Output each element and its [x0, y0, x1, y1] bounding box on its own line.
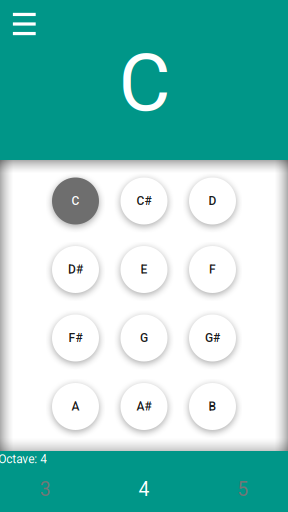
staticText: D	[208, 194, 216, 208]
staticText: A#	[136, 399, 151, 414]
staticText: D#	[68, 262, 83, 277]
staticText: G	[140, 331, 148, 345]
button[interactable]: D	[189, 177, 236, 224]
staticText: F#	[68, 331, 82, 345]
button[interactable]: D#	[52, 246, 99, 293]
button[interactable]: Menu	[2, 2, 47, 46]
button[interactable]: F#	[52, 314, 99, 361]
staticText: B	[208, 399, 216, 414]
button[interactable]: E	[120, 246, 167, 293]
staticText: G#	[205, 331, 220, 345]
button[interactable]: C	[52, 177, 99, 224]
button[interactable]: A#	[120, 383, 167, 430]
staticText: A	[71, 399, 79, 414]
staticText: 5	[237, 478, 248, 501]
button[interactable]: G	[120, 314, 167, 361]
button[interactable]: 5	[195, 469, 288, 509]
button[interactable]: G#	[189, 314, 236, 361]
staticText: C	[71, 194, 79, 208]
button[interactable]: A	[52, 383, 99, 430]
staticText: C#	[136, 194, 151, 208]
button[interactable]: B	[189, 383, 236, 430]
button[interactable]: F	[189, 246, 236, 293]
staticText: C	[119, 36, 171, 130]
button[interactable]: 4	[96, 469, 192, 509]
staticText: 4	[138, 478, 149, 501]
staticText: Octave: 4	[0, 452, 47, 466]
button[interactable]: 3	[0, 469, 93, 509]
staticText: 3	[40, 478, 51, 501]
button[interactable]: C#	[120, 177, 167, 224]
staticText: F	[209, 262, 216, 277]
staticText: E	[140, 262, 147, 277]
